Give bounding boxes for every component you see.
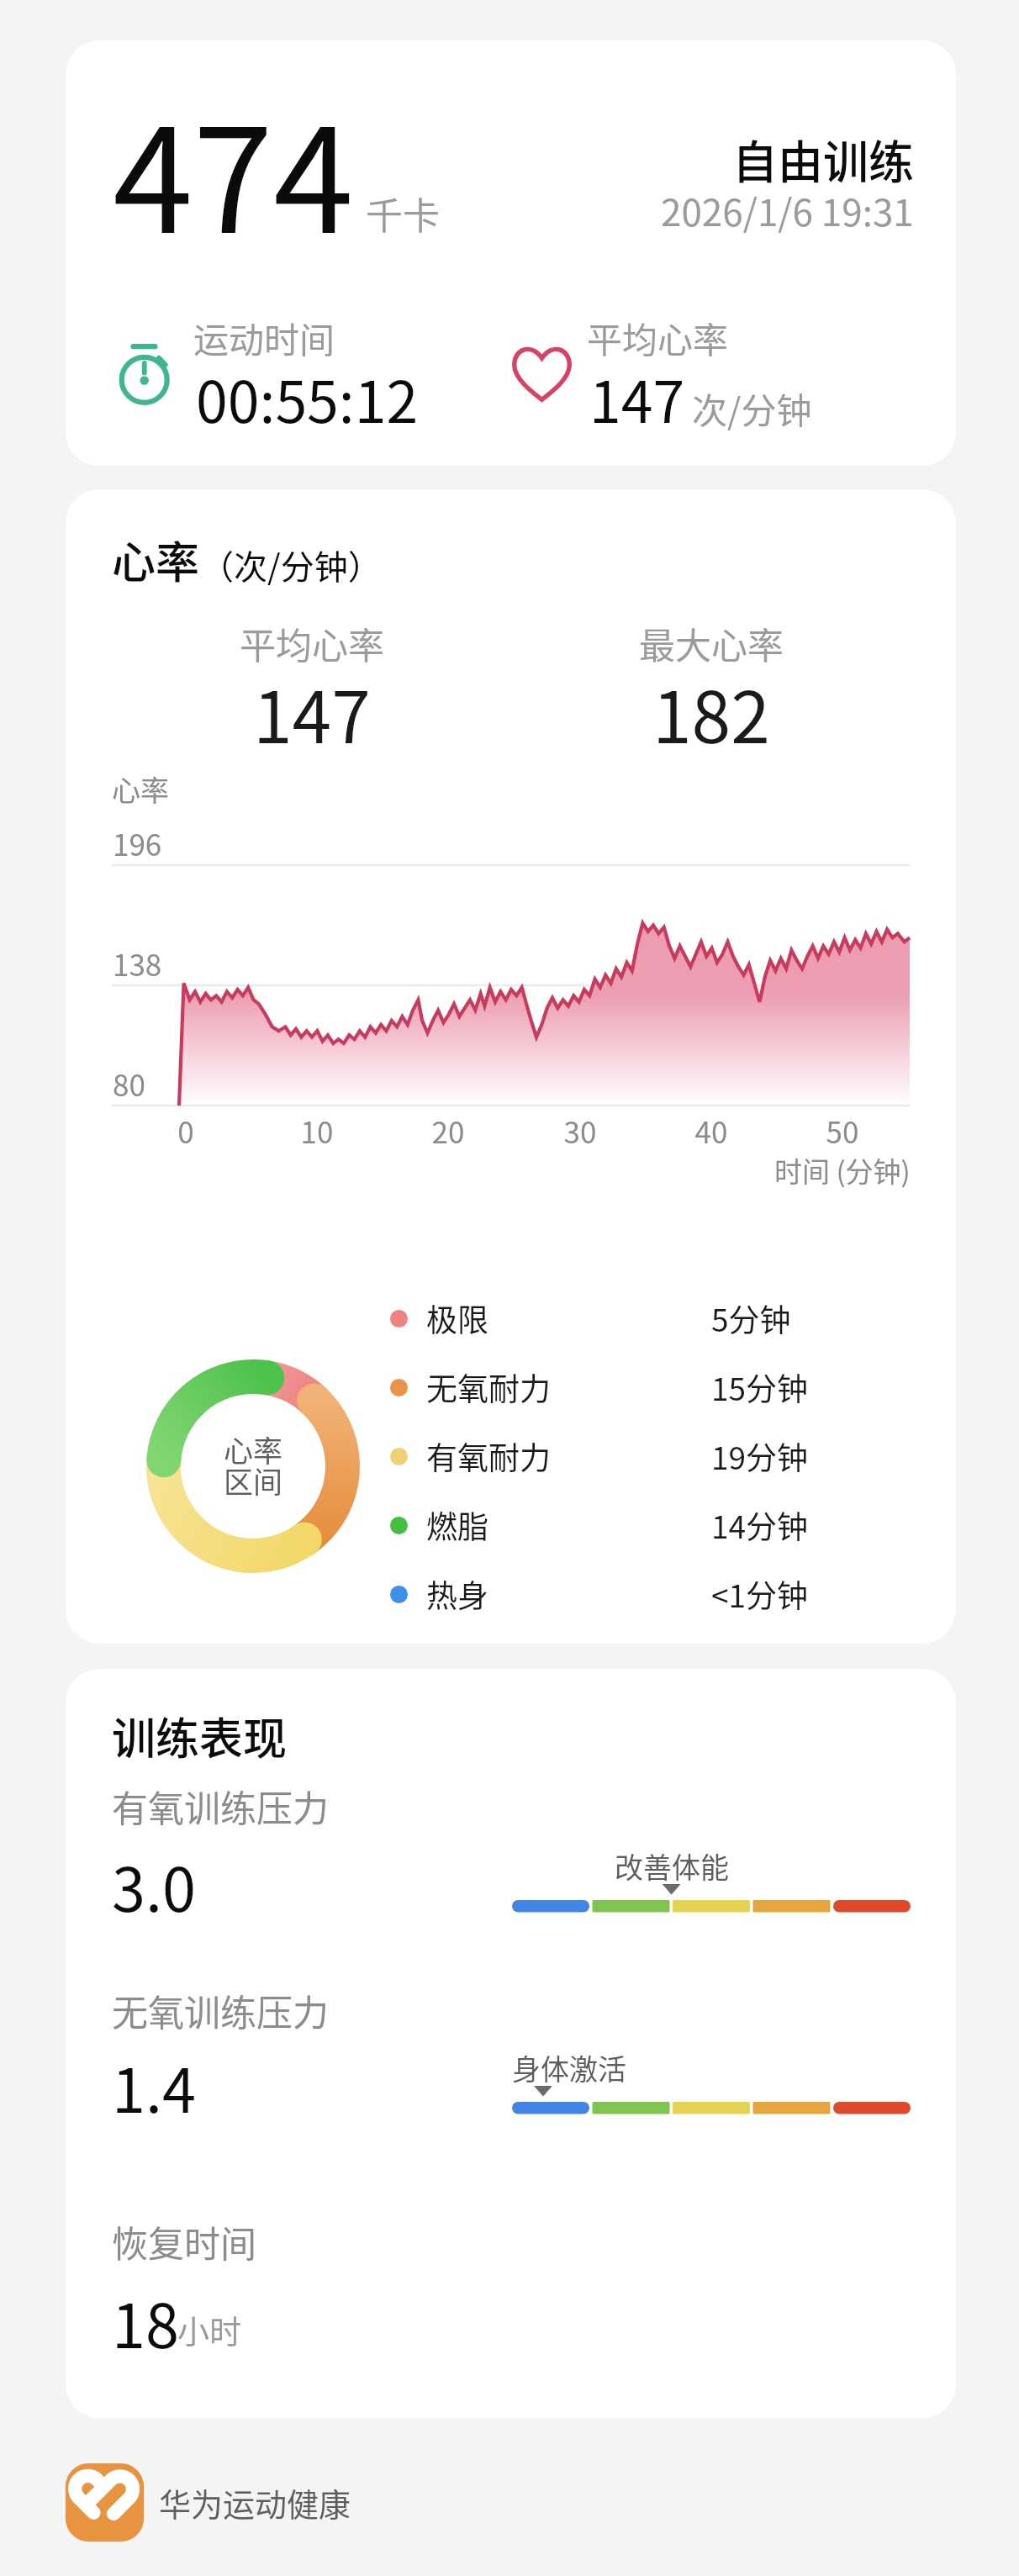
button[interactable]: 极限: [390, 1284, 911, 1353]
staticText: <1分钟: [711, 1571, 809, 1617]
button[interactable]: 热身: [390, 1560, 911, 1628]
staticText: 80: [113, 1062, 145, 1105]
staticText: 心率: [224, 1428, 283, 1470]
staticText: 00:55:12: [196, 356, 419, 439]
staticText: 最大心率: [639, 617, 784, 669]
staticText: 自由训练: [732, 126, 914, 192]
other: Average heart rate: [508, 336, 573, 402]
staticText: 恢复时间: [112, 2215, 256, 2267]
staticText: 0: [135, 1109, 236, 1152]
staticText: 时间 (分钟): [774, 1150, 911, 1190]
button[interactable]: Huawei Health: [66, 2460, 351, 2544]
staticText: 华为运动健康: [159, 2479, 351, 2526]
staticText: 平均心率: [240, 617, 384, 669]
button[interactable]: 474: [66, 40, 956, 466]
staticText: 区间: [224, 1459, 283, 1502]
staticText: 燃脂: [426, 1502, 488, 1548]
staticText: 1.4: [112, 2042, 196, 2130]
staticText: 3.0: [112, 1841, 196, 1929]
button[interactable]: 心率: [66, 489, 956, 1644]
staticText: 热身: [426, 1571, 488, 1617]
button[interactable]: 燃脂: [390, 1491, 911, 1560]
staticText: 千卡: [366, 187, 440, 240]
staticText: 训练表现: [112, 1704, 288, 1767]
staticText: 474: [113, 65, 354, 274]
staticText: 19分钟: [711, 1433, 809, 1479]
staticText: 147: [253, 662, 371, 764]
staticText: 有氧耐力: [426, 1433, 551, 1479]
staticText: 平均心率: [587, 312, 729, 363]
staticText: 身体激活: [512, 2047, 697, 2088]
staticText: 15分钟: [711, 1365, 809, 1410]
staticText: 147: [589, 356, 685, 439]
staticText: 次/分钟: [692, 383, 812, 434]
staticText: 2026/1/6 19:31: [661, 183, 914, 237]
staticText: 20: [398, 1109, 499, 1152]
button[interactable]: 训练表现: [66, 1669, 956, 2418]
staticText: 小时: [177, 2306, 242, 2352]
staticText: 196: [113, 821, 162, 864]
staticText: 有氧训练压力: [112, 1780, 329, 1832]
staticText: 50: [792, 1109, 893, 1152]
staticText: 运动时间: [193, 312, 335, 363]
staticText: 心率: [112, 528, 200, 591]
other: Huawei Health: [66, 2463, 144, 2542]
staticText: 10: [267, 1109, 367, 1152]
other: Duration: [114, 336, 180, 402]
staticText: 极限: [426, 1296, 488, 1341]
staticText: 30: [530, 1109, 631, 1152]
button[interactable]: 无氧耐力: [390, 1353, 911, 1422]
staticText: 心率: [112, 768, 169, 810]
staticText: 40: [661, 1109, 762, 1152]
button[interactable]: 有氧耐力: [390, 1422, 911, 1491]
staticText: 无氧训练压力: [112, 1984, 329, 2036]
staticText: 改善体能: [579, 1845, 764, 1887]
staticText: （次/分钟）: [200, 541, 382, 589]
staticText: 182: [652, 662, 770, 764]
staticText: 18: [112, 2278, 179, 2365]
staticText: 无氧耐力: [426, 1365, 551, 1410]
staticText: 138: [113, 942, 162, 984]
staticText: 14分钟: [711, 1502, 809, 1548]
staticText: 5分钟: [711, 1296, 791, 1341]
